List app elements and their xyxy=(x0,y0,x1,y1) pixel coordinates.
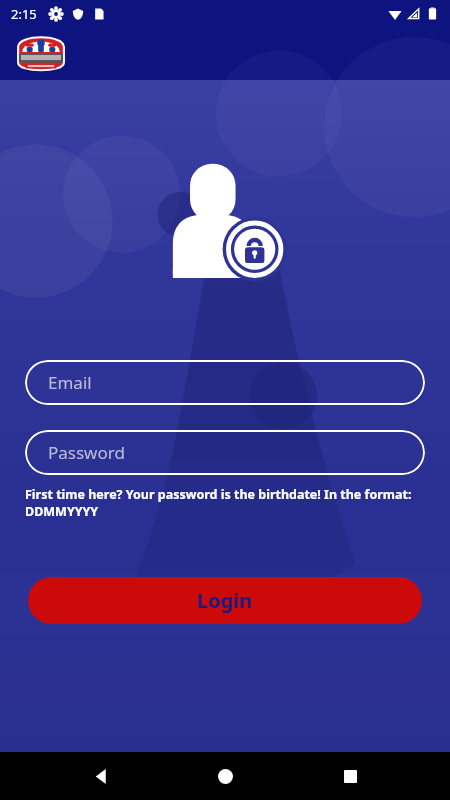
staticText: Password xyxy=(48,441,125,464)
button[interactable]: Recents xyxy=(326,752,374,800)
staticText: Email xyxy=(48,371,92,394)
staticText: Login xyxy=(197,587,253,614)
staticText: First time here? Your password is the bi… xyxy=(25,486,425,520)
button[interactable]: Champions Academy logo xyxy=(15,31,67,75)
button[interactable]: Email xyxy=(25,360,425,405)
button[interactable]: Back xyxy=(77,752,125,800)
button[interactable]: Home xyxy=(201,752,249,800)
staticText: 2:15 xyxy=(11,5,37,23)
button[interactable]: Login xyxy=(28,577,422,624)
button[interactable]: Password xyxy=(25,430,425,475)
